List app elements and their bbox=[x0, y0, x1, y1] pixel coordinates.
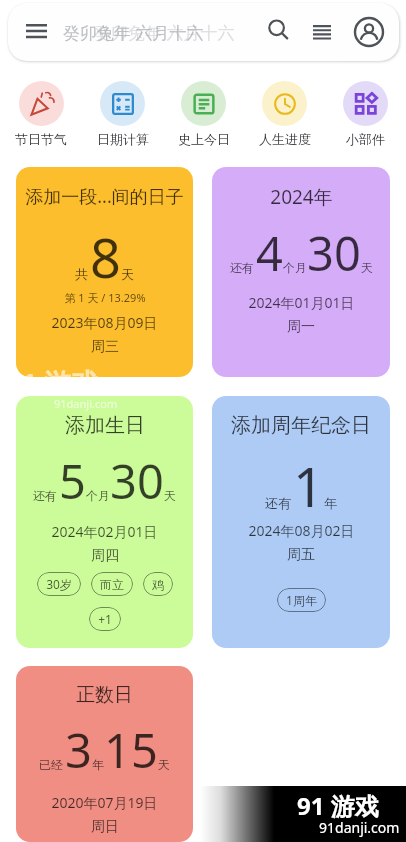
staticText: 正数日 bbox=[76, 683, 133, 707]
staticText: 天 bbox=[121, 266, 134, 282]
staticText: 已经 bbox=[39, 757, 63, 772]
staticText: 天 bbox=[164, 488, 176, 503]
staticText: 15 bbox=[104, 718, 158, 782]
staticText: 个月 bbox=[86, 488, 110, 503]
button[interactable]: Menu bbox=[19, 15, 53, 49]
staticText: 91 游戏 bbox=[297, 789, 379, 822]
staticText: 而立 bbox=[100, 577, 124, 592]
staticText: 周一 bbox=[287, 318, 315, 336]
staticText: 30 bbox=[110, 449, 164, 513]
staticText: 添加周年纪念日 bbox=[231, 413, 371, 438]
staticText: 周四 bbox=[91, 547, 119, 565]
staticText: 节日节气 bbox=[15, 131, 67, 147]
staticText: 2024年01月01日 bbox=[248, 293, 355, 312]
staticText: 小部件 bbox=[346, 131, 385, 147]
staticText: 1 bbox=[293, 449, 324, 523]
button[interactable]: 日期计算 bbox=[82, 81, 163, 147]
staticText: 2020年07月19日 bbox=[51, 793, 158, 812]
button[interactable]: 2024年 bbox=[212, 167, 390, 377]
staticText: 2024年 bbox=[270, 184, 333, 210]
staticText: 史上今日 bbox=[178, 131, 230, 147]
button[interactable]: 添加生日 bbox=[16, 396, 193, 648]
staticText: +1 bbox=[98, 611, 112, 627]
staticText: 还有 bbox=[230, 260, 254, 275]
staticText: 1周年 bbox=[286, 592, 317, 608]
staticText: 天 bbox=[361, 260, 373, 275]
staticText: 天 bbox=[158, 757, 170, 772]
button[interactable]: List view bbox=[305, 15, 339, 49]
button[interactable]: 1周年 bbox=[286, 588, 317, 612]
staticText: 癸卯兔年 六月十六 bbox=[94, 21, 235, 44]
staticText: 年 bbox=[92, 757, 104, 772]
button[interactable]: 添加一段...间的日子 bbox=[16, 167, 193, 377]
staticText: 第 1 天 / 13.29% bbox=[64, 290, 146, 305]
staticText: 30 bbox=[307, 221, 361, 285]
staticText: 91 游戏 bbox=[6, 364, 98, 401]
button[interactable]: Search bbox=[261, 15, 295, 49]
staticText: 添加一段...间的日子 bbox=[25, 184, 184, 209]
button[interactable]: 鸡 bbox=[152, 572, 164, 596]
staticText: 人生进度 bbox=[259, 131, 311, 147]
staticText: 周五 bbox=[287, 546, 315, 564]
staticText: 30岁 bbox=[46, 576, 72, 592]
staticText: 添加生日 bbox=[65, 413, 145, 438]
staticText: 3 bbox=[65, 718, 92, 782]
staticText: 91danji.com bbox=[319, 818, 400, 837]
button[interactable]: +1 bbox=[98, 607, 112, 631]
button[interactable]: Profile bbox=[352, 15, 386, 49]
button[interactable]: 史上今日 bbox=[163, 81, 244, 147]
staticText: 还有 bbox=[265, 495, 291, 511]
staticText: 91danji.com bbox=[54, 396, 118, 411]
staticText: 周三 bbox=[91, 338, 119, 356]
button[interactable]: Menu bbox=[8, 3, 399, 61]
staticText: 共 bbox=[75, 266, 88, 282]
staticText: 2024年08月02日 bbox=[248, 521, 355, 540]
staticText: 5 bbox=[59, 449, 86, 513]
staticText: 日期计算 bbox=[97, 131, 149, 147]
button[interactable]: 人生进度 bbox=[244, 81, 325, 147]
button[interactable]: 小部件 bbox=[325, 81, 406, 147]
button[interactable]: 30岁 bbox=[46, 572, 72, 596]
button[interactable]: 节日节气 bbox=[0, 81, 82, 147]
staticText: 癸卯兔年 六月十六 bbox=[63, 21, 204, 44]
staticText: 2024年02月01日 bbox=[51, 522, 158, 541]
staticText: 周日 bbox=[91, 818, 119, 836]
staticText: 还有 bbox=[33, 488, 57, 503]
staticText: 2023年08月09日 bbox=[51, 313, 158, 332]
button[interactable]: 正数日 bbox=[16, 666, 193, 842]
button[interactable]: 而立 bbox=[100, 572, 124, 596]
staticText: 鸡 bbox=[152, 577, 164, 592]
staticText: 年 bbox=[324, 495, 337, 511]
staticText: 个月 bbox=[283, 260, 307, 275]
button[interactable]: 添加周年纪念日 bbox=[212, 396, 390, 648]
staticText: 8 bbox=[90, 220, 121, 294]
staticText: 4 bbox=[256, 221, 283, 285]
